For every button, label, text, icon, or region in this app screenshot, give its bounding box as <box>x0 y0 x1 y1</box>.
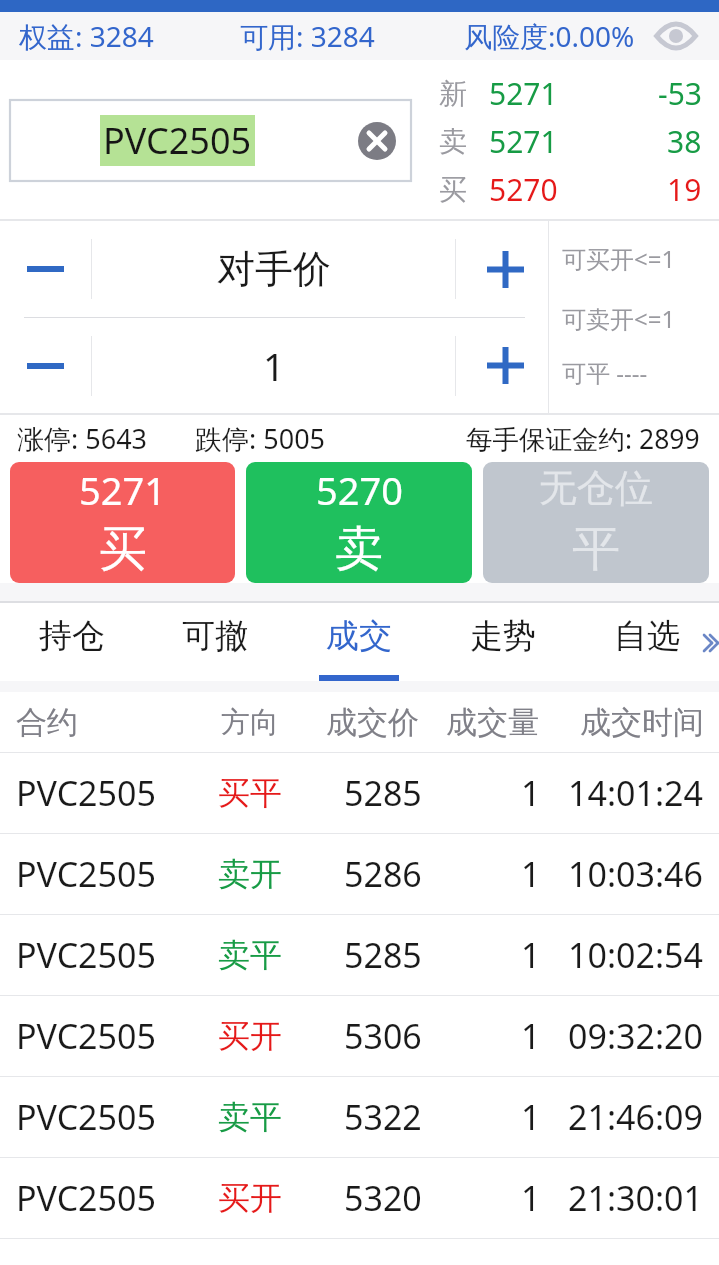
staticText: 14:01:24 <box>568 770 703 816</box>
button[interactable]: 可撤 <box>143 603 287 681</box>
staticText: 跌停: 5005 <box>195 420 326 457</box>
button[interactable]: PVC2505 <box>10 100 411 181</box>
staticText: PVC2505 <box>16 932 156 978</box>
button[interactable]: Toggle balance visibility <box>653 13 699 59</box>
button[interactable]: Increase <box>456 221 548 317</box>
staticText: 5286 <box>344 851 422 897</box>
staticText: 1 <box>521 1175 541 1221</box>
staticText: 5306 <box>344 1013 422 1059</box>
staticText: 1 <box>521 770 541 816</box>
staticText: 10:02:54 <box>568 932 703 978</box>
button[interactable]: PVC2505 <box>0 753 719 833</box>
button[interactable]: PVC2505 <box>0 1077 719 1157</box>
staticText: 09:32:20 <box>568 1013 703 1059</box>
staticText: 1 <box>521 851 541 897</box>
button[interactable]: 自选 <box>575 603 719 681</box>
staticText: 风险度:0.00% <box>464 17 635 55</box>
staticText: 可卖开<=1 <box>562 302 676 335</box>
staticText: 21:30:01 <box>568 1175 703 1221</box>
button[interactable]: Decrease <box>0 221 91 317</box>
staticText: 走势 <box>470 615 536 657</box>
staticText: 无仓位 <box>539 464 653 512</box>
staticText: 卖开 <box>218 854 282 894</box>
staticText: 买 <box>439 172 467 207</box>
button[interactable]: 无仓位 <box>483 462 709 583</box>
staticText: 5285 <box>344 770 422 816</box>
staticText: 成交量 <box>446 703 539 742</box>
button[interactable]: 成交 <box>287 603 431 681</box>
staticText: 10:03:46 <box>568 851 703 897</box>
staticText: 买开 <box>218 1016 282 1056</box>
staticText: 1 <box>521 932 541 978</box>
staticText: 可平 ---- <box>562 356 648 389</box>
staticText: 19 <box>667 169 702 210</box>
staticText: 5271 <box>79 464 166 516</box>
staticText: 21:46:09 <box>568 1094 703 1140</box>
staticText: 1 <box>521 1013 541 1059</box>
button[interactable]: 持仓 <box>0 603 143 681</box>
button[interactable]: PVC2505 <box>0 915 719 995</box>
staticText: 自选 <box>614 615 680 657</box>
staticText: 方向 <box>221 704 279 741</box>
button[interactable]: PVC2505 <box>0 1158 719 1238</box>
staticText: 38 <box>667 121 702 162</box>
button[interactable]: More tabs <box>685 603 719 681</box>
staticText: PVC2505 <box>16 1094 156 1140</box>
button[interactable]: Decrease <box>0 318 91 413</box>
staticText: 对手价 <box>217 245 331 293</box>
staticText: 可用: 3284 <box>240 17 375 55</box>
staticText: 5270 <box>316 464 403 516</box>
staticText: 卖平 <box>218 1097 282 1137</box>
staticText: PVC2505 <box>16 770 156 816</box>
staticText: 5322 <box>344 1094 422 1140</box>
staticText: -53 <box>658 73 702 114</box>
staticText: 权益: 3284 <box>19 17 154 55</box>
staticText: 涨停: 5643 <box>17 420 148 457</box>
staticText: 5271 <box>489 73 558 114</box>
staticText: 5320 <box>344 1175 422 1221</box>
button[interactable]: 合约 <box>0 692 719 752</box>
staticText: 成交 <box>326 615 392 657</box>
button[interactable]: 5271 <box>10 462 235 583</box>
staticText: 成交时间 <box>580 703 704 742</box>
staticText: 5285 <box>344 932 422 978</box>
staticText: 卖 <box>335 519 383 579</box>
button[interactable]: PVC2505 <box>0 834 719 914</box>
staticText: 买 <box>99 519 147 579</box>
staticText: PVC2505 <box>16 1175 156 1221</box>
staticText: 卖 <box>439 124 467 159</box>
staticText: 可撤 <box>182 615 248 657</box>
staticText: 1 <box>521 1094 541 1140</box>
staticText: 持仓 <box>39 615 105 657</box>
button[interactable]: 走势 <box>431 603 575 681</box>
staticText: 买开 <box>218 1178 282 1218</box>
staticText: 新 <box>439 76 467 111</box>
staticText: 5270 <box>489 169 558 210</box>
button[interactable]: Clear contract <box>358 122 396 160</box>
button[interactable]: Increase <box>456 318 548 413</box>
staticText: PVC2505 <box>16 851 156 897</box>
staticText: PVC2505 <box>103 116 252 165</box>
staticText: 5271 <box>489 121 558 162</box>
staticText: 1 <box>263 340 285 392</box>
button[interactable]: 5270 <box>246 462 472 583</box>
button[interactable]: PVC2505 <box>0 996 719 1076</box>
staticText: 合约 <box>16 703 78 742</box>
staticText: 平 <box>572 519 620 579</box>
staticText: 每手保证金约: 2899 <box>466 421 700 457</box>
staticText: 可买开<=1 <box>562 242 676 275</box>
staticText: PVC2505 <box>16 1013 156 1059</box>
staticText: 成交价 <box>326 703 419 742</box>
staticText: 卖平 <box>218 935 282 975</box>
staticText: 买平 <box>218 773 282 813</box>
